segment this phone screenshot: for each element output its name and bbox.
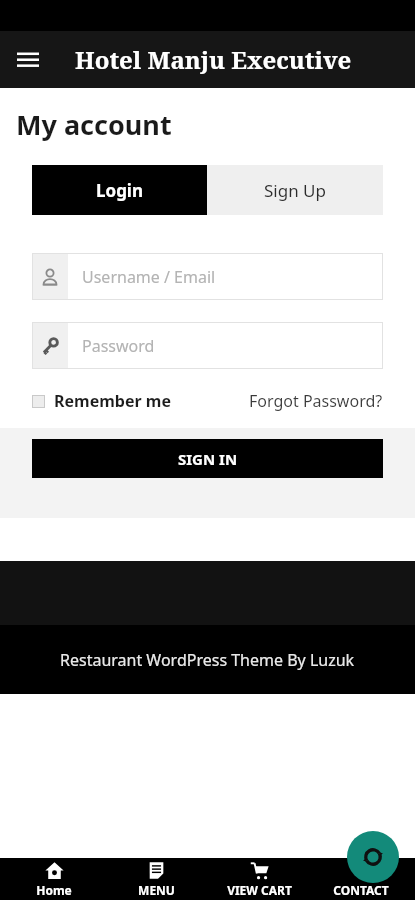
staticText: Restaurant WordPress Theme By Luzuk [60,649,355,671]
staticText: Forgot Password? [249,390,383,412]
staticText: Hotel Manju Executive [75,43,352,76]
staticText: CONTACT [333,882,389,898]
staticText: VIEW CART [227,882,292,898]
button[interactable]: Home [5,858,103,900]
button[interactable]: Username / Email [32,253,383,300]
staticText: My account [16,106,172,143]
button[interactable]: Forgot Password? [249,390,383,412]
button[interactable]: Remember me [32,390,171,412]
staticText: Username / Email [82,266,216,288]
staticText: SIGN IN [178,449,238,469]
staticText: Home [36,882,72,898]
button[interactable]: Sign Up [207,165,383,215]
staticText: MENU [138,882,175,898]
button[interactable]: Refresh [347,831,399,883]
button[interactable]: VIEW CART [210,858,308,900]
button[interactable]: Open navigation menu [8,40,48,80]
button[interactable]: MENU [107,858,205,900]
staticText: Password [82,335,155,357]
button[interactable]: CONTACT [312,858,410,900]
staticText: Remember me [54,390,171,412]
button[interactable]: Password [32,322,383,369]
button[interactable]: Login [32,165,207,215]
staticText: Login [96,179,144,202]
staticText: Sign Up [264,179,326,202]
button[interactable]: SIGN IN [32,439,383,478]
